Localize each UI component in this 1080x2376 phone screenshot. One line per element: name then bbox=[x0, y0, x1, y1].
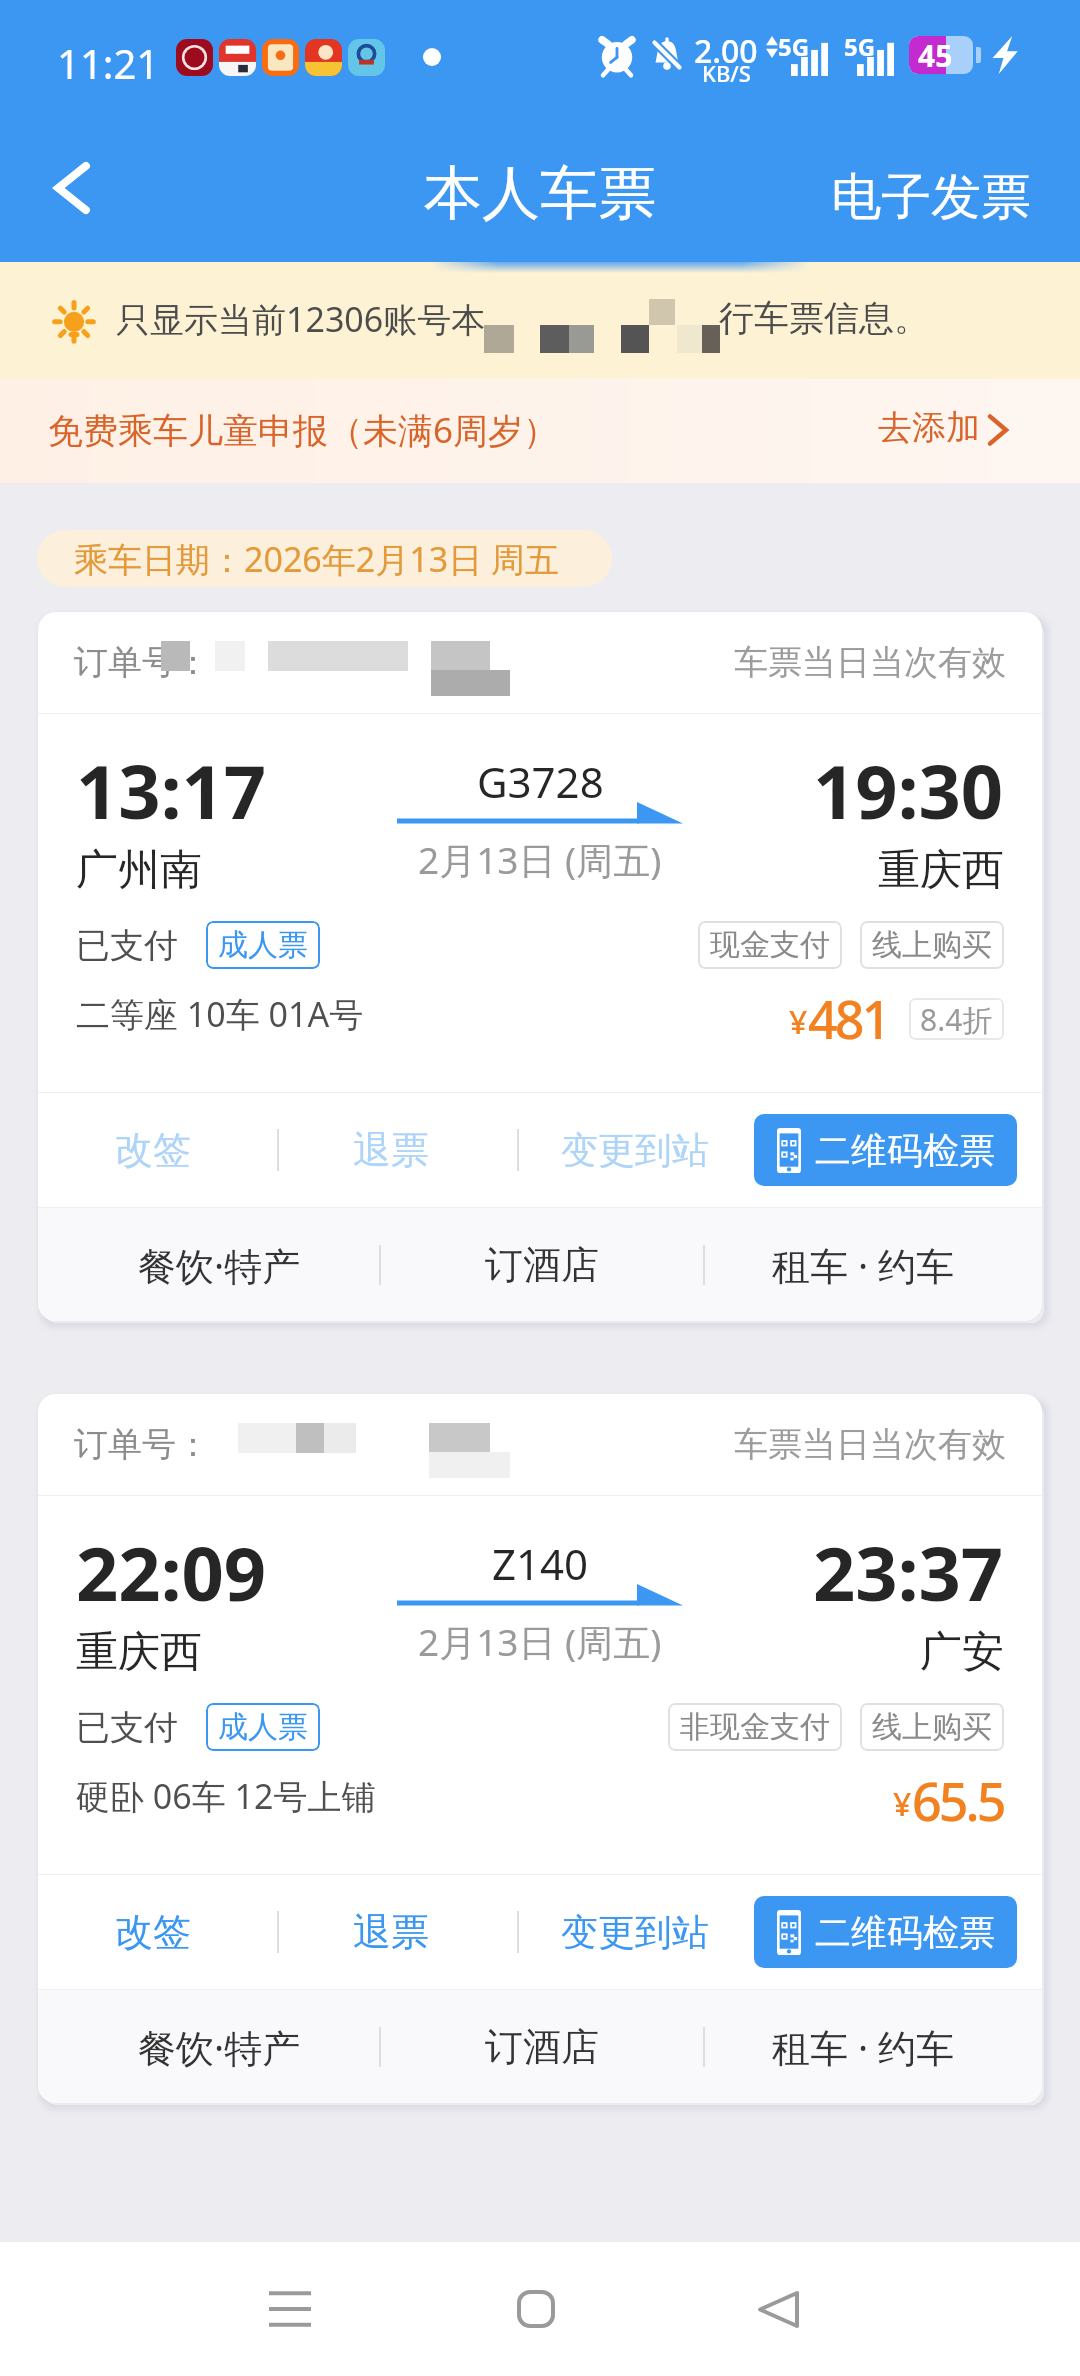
staticText: 成人票 bbox=[218, 926, 308, 964]
staticText: 行车票信息。 bbox=[719, 296, 929, 340]
staticText: 线上购买 bbox=[872, 926, 992, 964]
staticText: 成人票 bbox=[218, 1708, 308, 1746]
staticText: 退票 bbox=[353, 1908, 429, 1956]
staticText: 本人车票 bbox=[424, 157, 656, 230]
button[interactable]: 二维码检票 bbox=[754, 1114, 1017, 1186]
staticText: 已支付 bbox=[76, 1706, 178, 1749]
button[interactable]: 免费乘车儿童申报（未满6周岁） bbox=[0, 379, 1080, 483]
button[interactable]: 租车 · 约车 bbox=[683, 1990, 1042, 2103]
staticText: 22:09 bbox=[76, 1522, 267, 1623]
staticText: G3728 bbox=[477, 753, 604, 810]
staticText: 5G bbox=[844, 30, 876, 63]
staticText: 广安 bbox=[920, 1626, 1004, 1679]
staticText: 订酒店 bbox=[485, 1241, 599, 1289]
staticText: 硬卧 06车 12号上铺 bbox=[76, 1773, 376, 1819]
button[interactable]: 电子发票 bbox=[791, 152, 1080, 243]
staticText: 5G bbox=[778, 30, 810, 63]
staticText: 乘车日期：2026年2月13日 周五 bbox=[74, 536, 559, 582]
button[interactable]: 租车 · 约车 bbox=[683, 1208, 1042, 1321]
button[interactable]: 餐饮·特产 bbox=[38, 1208, 400, 1321]
button[interactable]: 退票 bbox=[279, 1093, 502, 1207]
staticText: 23:37 bbox=[813, 1522, 1004, 1623]
staticText: 广州南 bbox=[76, 844, 202, 897]
staticText: 11:21 bbox=[57, 36, 160, 90]
staticText: 变更到站 bbox=[561, 1909, 709, 1956]
staticText: ¥ bbox=[893, 1782, 912, 1826]
staticText: 只显示当前12306账号本 bbox=[116, 296, 486, 342]
staticText: 65.5 bbox=[912, 1765, 1004, 1836]
button[interactable]: 乘车日期：2026年2月13日 周五 bbox=[37, 530, 612, 587]
staticText: 19:30 bbox=[813, 740, 1004, 841]
staticText: 免费乘车儿童申报（未满6周岁） bbox=[48, 406, 559, 454]
staticText: 车票当日当次有效 bbox=[734, 1423, 1006, 1466]
button[interactable]: 餐饮·特产 bbox=[38, 1990, 400, 2103]
staticText: 2月13日 (周五) bbox=[418, 834, 662, 885]
staticText: Z140 bbox=[492, 1535, 589, 1592]
button[interactable]: Recent apps bbox=[220, 2242, 360, 2376]
staticText: 已支付 bbox=[76, 924, 178, 967]
staticText: 重庆西 bbox=[878, 844, 1004, 897]
staticText: 餐饮·特产 bbox=[138, 1239, 301, 1291]
staticText: 电子发票 bbox=[831, 166, 1031, 229]
button[interactable]: 订单号： bbox=[38, 612, 1042, 1321]
staticText: 餐饮·特产 bbox=[138, 2021, 301, 2073]
button[interactable]: 变更到站 bbox=[519, 1875, 751, 1989]
staticText: 45 bbox=[918, 36, 953, 73]
staticText: 订酒店 bbox=[485, 2023, 599, 2071]
button[interactable]: Home bbox=[466, 2242, 606, 2376]
staticText: 改签 bbox=[115, 1908, 191, 1956]
staticText: 2月13日 (周五) bbox=[418, 1616, 662, 1667]
staticText: 二维码检票 bbox=[815, 1910, 995, 1955]
button[interactable]: 变更到站 bbox=[519, 1093, 751, 1207]
staticText: 退票 bbox=[353, 1126, 429, 1174]
button[interactable]: 改签 bbox=[38, 1875, 267, 1989]
button[interactable]: 改签 bbox=[38, 1093, 267, 1207]
staticText: 订单号： bbox=[74, 1423, 210, 1466]
staticText: 非现金支付 bbox=[680, 1708, 830, 1746]
staticText: 481 bbox=[808, 983, 889, 1054]
staticText: ¥ bbox=[789, 1000, 808, 1044]
button[interactable]: 订单号： bbox=[38, 1394, 1042, 2103]
button[interactable]: 订酒店 bbox=[381, 1990, 703, 2103]
button[interactable]: Back bbox=[708, 2242, 848, 2376]
button[interactable]: 退票 bbox=[279, 1875, 502, 1989]
staticText: KB/S bbox=[702, 58, 751, 88]
staticText: 二等座 10车 01A号 bbox=[76, 991, 364, 1037]
button[interactable]: 二维码检票 bbox=[754, 1896, 1017, 1968]
button[interactable]: Back bbox=[28, 142, 120, 234]
button[interactable]: 订酒店 bbox=[381, 1208, 703, 1321]
staticText: 13:17 bbox=[76, 740, 267, 841]
staticText: 现金支付 bbox=[710, 926, 830, 964]
staticText: 线上购买 bbox=[872, 1708, 992, 1746]
staticText: 租车 · 约车 bbox=[772, 1239, 954, 1291]
staticText: 8.4折 bbox=[920, 999, 993, 1040]
staticText: 二维码检票 bbox=[815, 1128, 995, 1173]
staticText: 变更到站 bbox=[561, 1127, 709, 1174]
staticText: 去添加 bbox=[878, 406, 980, 449]
staticText: 车票当日当次有效 bbox=[734, 641, 1006, 684]
staticText: 重庆西 bbox=[76, 1626, 202, 1679]
staticText: 2.00 bbox=[694, 29, 758, 73]
staticText: 改签 bbox=[115, 1126, 191, 1174]
staticText: 订单号： bbox=[74, 641, 210, 684]
staticText: 租车 · 约车 bbox=[772, 2021, 954, 2073]
